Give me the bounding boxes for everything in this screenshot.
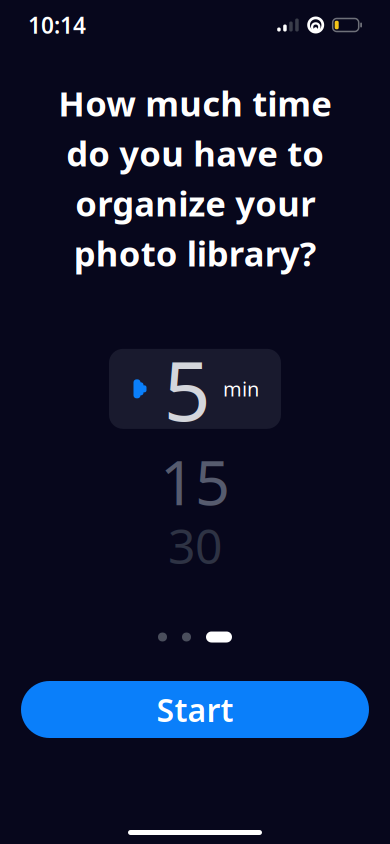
staticText: How much time do you have to organize yo… [58,80,332,276]
staticText: Start [156,688,233,731]
staticText: 15 [160,441,230,522]
staticText: 5 [163,334,210,444]
staticText: 10:14 [28,10,86,40]
button[interactable]: Start [21,681,369,738]
button[interactable]: 5 minutes, selected [109,349,281,429]
staticText: 30 [168,513,222,577]
staticText: min [223,376,259,402]
